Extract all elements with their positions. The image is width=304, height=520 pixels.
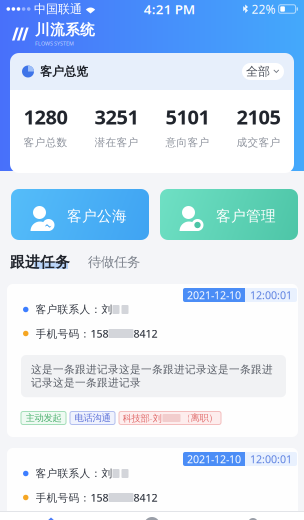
staticText: 主动发起: [25, 412, 61, 424]
staticText: 客户公海: [67, 207, 127, 225]
staticText: 客户联系人：刘: [35, 303, 112, 316]
staticText: （离职）: [181, 412, 217, 424]
staticText: 客户管理: [216, 207, 276, 225]
staticText: 潜在客户: [94, 136, 138, 149]
staticText: 电话沟通: [74, 412, 110, 424]
staticText: FLOWS SYSTEM: [35, 40, 74, 47]
staticText: 12:00:01: [250, 288, 292, 302]
button[interactable]: 首页: [0, 512, 101, 520]
button[interactable]: 客户: [101, 512, 202, 520]
staticText: 2105: [236, 103, 280, 130]
staticText: 全部: [246, 64, 270, 79]
staticText: 客户总览: [40, 64, 88, 79]
staticText: 跟进任务: [10, 253, 70, 271]
button[interactable]: 全部: [242, 63, 284, 80]
staticText: 1280: [23, 103, 67, 130]
staticText: 8412: [133, 490, 157, 505]
staticText: 2021-12-10: [187, 452, 241, 466]
button[interactable]: 客户联系人：刘: [7, 284, 298, 437]
staticText: 12:00:01: [250, 452, 292, 466]
staticText: 川流系统: [35, 21, 95, 39]
staticText: 2021-12-10: [187, 288, 241, 302]
button[interactable]: 我的: [202, 512, 303, 520]
staticText: 中国联通: [34, 2, 82, 16]
staticText: 手机号码：158: [35, 326, 108, 341]
button[interactable]: 客户公海: [11, 189, 149, 240]
button[interactable]: 跟进任务: [10, 253, 70, 271]
staticText: 5101: [165, 103, 209, 130]
staticText: 客户联系人：刘: [35, 467, 112, 480]
staticText: 手机号码：158: [35, 490, 108, 505]
button[interactable]: 客户联系人：刘: [7, 448, 298, 520]
staticText: 8412: [133, 326, 157, 341]
staticText: 意向客户: [165, 136, 209, 149]
staticText: 客户总数: [23, 136, 67, 149]
staticText: 成交客户: [236, 136, 280, 149]
staticText: 22%: [252, 1, 276, 17]
staticText: 待做任务: [88, 254, 140, 270]
staticText: 这是一条跟进记录这是一条跟进记录这是一条跟进记录这是一条跟进记录: [31, 363, 273, 389]
staticText: 4:21 PM: [144, 0, 195, 18]
button[interactable]: 待做任务: [88, 254, 140, 270]
button[interactable]: 客户管理: [160, 189, 298, 240]
staticText: 3251: [94, 103, 138, 130]
staticText: 科技部-刘: [122, 412, 161, 424]
